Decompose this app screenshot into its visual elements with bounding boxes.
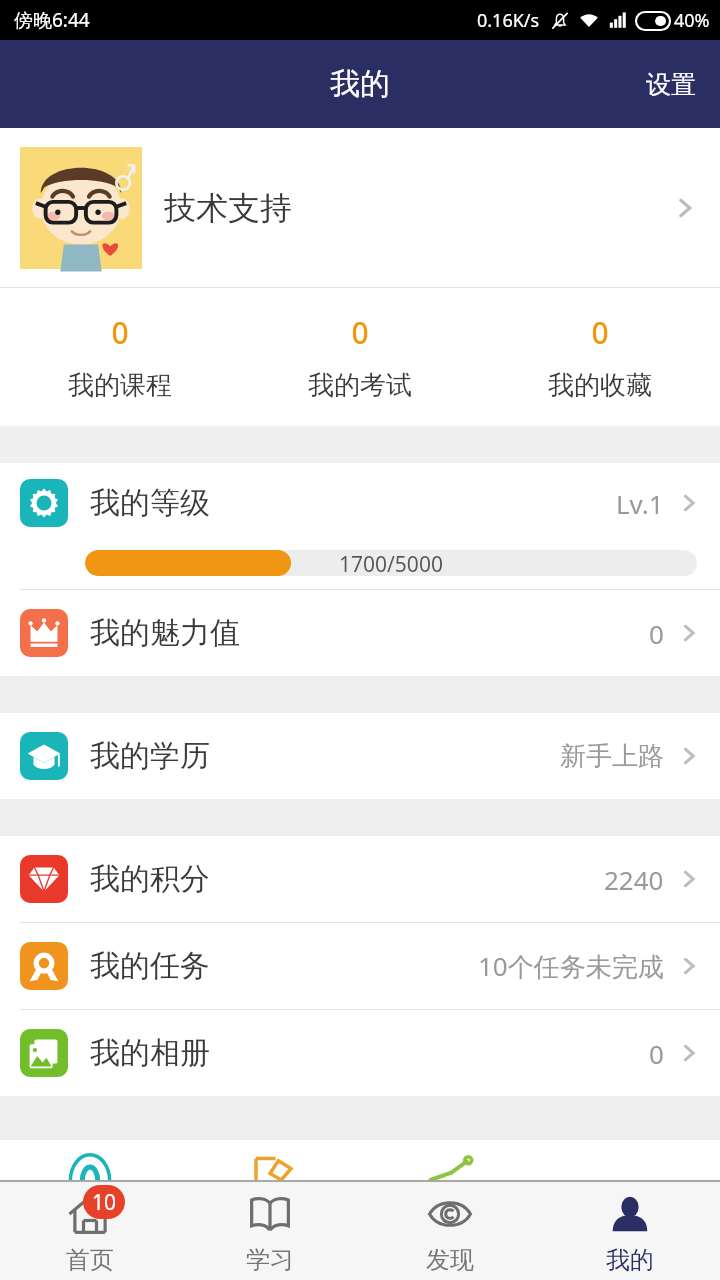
staticText: 我的考试 [308, 369, 412, 402]
staticText: 首页 [66, 1245, 114, 1275]
staticText: 10 [92, 1188, 117, 1217]
staticText: 我的课程 [68, 369, 172, 402]
staticText: 新手上路 [560, 740, 664, 773]
button[interactable]: 我的任务 [0, 923, 720, 1009]
staticText: 0 [111, 312, 129, 353]
button[interactable]: 0 [0, 288, 240, 426]
staticText: 我的相册 [90, 1034, 210, 1072]
button[interactable]: 我的相册 [0, 1010, 720, 1096]
button[interactable]: 技术支持 [0, 128, 720, 288]
staticText: 我的 [606, 1245, 654, 1275]
button[interactable]: 我的魅力值 [0, 590, 720, 676]
staticText: 技术支持 [164, 188, 292, 228]
button[interactable]: 我的学历 [0, 713, 720, 799]
button[interactable]: 0 [240, 288, 480, 426]
staticText: 40% [674, 8, 710, 33]
staticText: 我的积分 [90, 860, 210, 898]
staticText: 10个任务未完成 [478, 948, 664, 984]
button[interactable]: 学习 [180, 1182, 360, 1280]
button[interactable]: 我的积分 [0, 836, 720, 922]
staticText: 0 [351, 312, 369, 353]
staticText: 学习 [246, 1245, 294, 1275]
staticText: 我的收藏 [548, 369, 652, 402]
staticText: 0 [649, 1036, 664, 1071]
staticText: 傍晚6:44 [14, 7, 90, 33]
button[interactable]: 发现 [360, 1182, 540, 1280]
button[interactable]: 我的等级 [0, 463, 720, 543]
staticText: 我的魅力值 [90, 614, 240, 652]
staticText: 2240 [604, 862, 664, 897]
staticText: 我的任务 [90, 947, 210, 985]
staticText: 0 [591, 312, 609, 353]
staticText: 0 [649, 616, 664, 651]
button[interactable]: 0 [480, 288, 720, 426]
button[interactable]: 10 [0, 1182, 180, 1280]
staticText: Lv.1 [616, 486, 664, 521]
staticText: 1700/5000 [339, 550, 443, 576]
staticText: 我的 [330, 65, 390, 103]
staticText: 0.16K/s [477, 8, 540, 33]
staticText: 我的学历 [90, 737, 210, 775]
button[interactable]: 我的 [540, 1182, 720, 1280]
staticText: 设置 [646, 69, 696, 100]
staticText: 发现 [426, 1245, 474, 1275]
button[interactable]: 设置 [622, 49, 720, 120]
staticText: 我的等级 [90, 484, 210, 522]
